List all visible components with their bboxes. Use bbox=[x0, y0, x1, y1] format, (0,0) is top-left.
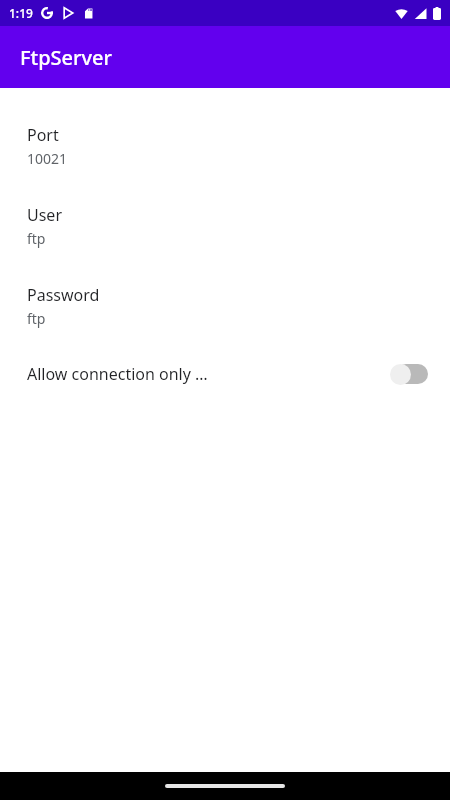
button[interactable]: Allow connection only when connected to … bbox=[390, 361, 428, 387]
staticText: FtpServer bbox=[20, 44, 113, 71]
button[interactable]: Port bbox=[0, 106, 450, 186]
button[interactable]: Allow connection only when connected t.. bbox=[0, 346, 450, 402]
staticText: 1:19 bbox=[9, 5, 33, 21]
staticText: Port bbox=[27, 124, 59, 146]
button[interactable]: Password bbox=[0, 266, 450, 346]
staticText: ftp bbox=[27, 309, 46, 328]
button[interactable]: User bbox=[0, 186, 450, 266]
staticText: 10021 bbox=[27, 149, 68, 168]
staticText: ftp bbox=[27, 229, 46, 248]
staticText: Password bbox=[27, 284, 100, 306]
staticText: Allow connection only when connected t.. bbox=[27, 363, 208, 385]
staticText: User bbox=[27, 204, 62, 226]
